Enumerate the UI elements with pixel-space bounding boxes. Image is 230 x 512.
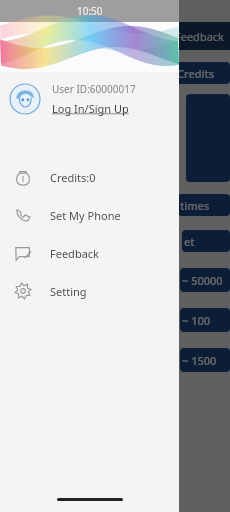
button[interactable]: Feedback [0, 234, 179, 272]
button[interactable]: et [182, 230, 230, 252]
staticText: Setting [50, 284, 87, 299]
staticText: User ID:60000017 [52, 82, 136, 96]
button[interactable]: ~ 50000 [180, 268, 230, 292]
button[interactable]: Set My Phone [0, 196, 179, 234]
staticText: times [180, 198, 210, 213]
staticText: ~ 100 [182, 313, 211, 328]
staticText: Credits [177, 66, 215, 81]
button[interactable]: ~ 100 [180, 308, 230, 332]
staticText: ~ 1500 [182, 353, 217, 368]
staticText: Feedback [175, 29, 224, 44]
staticText: ~ 50000 [182, 273, 223, 288]
button[interactable]: ~ 1500 [180, 348, 230, 372]
staticText: 10:50 [77, 4, 103, 18]
button[interactable] [186, 94, 230, 182]
staticText: et [184, 234, 195, 249]
button[interactable]: User ID:60000017 [10, 76, 169, 122]
staticText: Feedback [50, 246, 99, 261]
button[interactable]: Feedback [162, 29, 224, 44]
staticText: Set My Phone [50, 208, 121, 223]
button[interactable]: Setting [0, 272, 179, 310]
button[interactable]: times [178, 194, 230, 216]
staticText: Credits:0 [50, 170, 96, 185]
staticText: Log In/Sign Up [52, 101, 129, 116]
button[interactable]: Credits:0 [0, 158, 179, 196]
button[interactable]: Credits [175, 62, 230, 84]
